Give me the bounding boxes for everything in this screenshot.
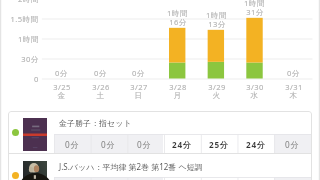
staticText: 24分: [246, 139, 266, 150]
button[interactable]: 0分: [126, 177, 163, 180]
button[interactable]: 48分: [200, 177, 237, 180]
staticText: 木: [289, 91, 298, 100]
staticText: 3/30: [246, 82, 264, 91]
button[interactable]: 52分: [163, 177, 200, 180]
button[interactable]: 0分: [54, 177, 90, 180]
button[interactable]: 24分: [237, 134, 274, 153]
staticText: 金: [57, 91, 66, 100]
button[interactable]: 0分: [54, 134, 90, 153]
staticText: 1時間: [206, 10, 227, 19]
staticText: 水: [250, 91, 259, 100]
staticText: 0分: [285, 139, 300, 150]
staticText: 3/25: [53, 82, 71, 91]
staticText: 1.5時間: [10, 14, 39, 24]
button[interactable]: 0分: [126, 134, 163, 153]
button[interactable]: 24分: [163, 134, 200, 153]
staticText: 3/27: [130, 82, 148, 91]
staticText: 0: [34, 74, 39, 84]
staticText: 0分: [55, 68, 68, 77]
staticText: 金子勝子：指セット: [59, 118, 132, 128]
staticText: 2時間: [18, 0, 39, 4]
staticText: 1時間: [18, 34, 39, 44]
staticText: 1時間: [167, 8, 188, 17]
staticText: 0分: [65, 139, 80, 150]
button[interactable]: 0分: [90, 134, 126, 153]
button[interactable]: 0分: [90, 177, 126, 180]
staticText: 3/31: [285, 82, 303, 91]
staticText: 13分: [208, 19, 226, 28]
staticText: J.S.バッハ：平均律 第2巻 第12番 ヘ短調: [59, 161, 203, 172]
button[interactable]: 金子勝子：指セット: [8, 111, 312, 153]
staticText: 日: [134, 91, 143, 100]
staticText: 火: [212, 91, 221, 100]
button[interactable]: 0分: [274, 177, 311, 180]
button[interactable]: J.S.バッハ：平均律 第2巻 第12番 ヘ短調: [8, 154, 312, 180]
staticText: 月: [173, 91, 182, 100]
staticText: 25分: [209, 139, 229, 150]
staticText: 24分: [172, 139, 192, 150]
staticText: 0分: [287, 68, 300, 77]
staticText: 1時間: [244, 0, 265, 7]
staticText: 0分: [137, 139, 152, 150]
staticText: 3/29: [208, 82, 226, 91]
staticText: 16分: [169, 17, 187, 26]
button[interactable]: 25分: [200, 134, 237, 153]
button[interactable]: 67分: [237, 177, 274, 180]
staticText: 0分: [101, 139, 116, 150]
button[interactable]: 0分: [274, 134, 311, 153]
staticText: 3/28: [169, 82, 187, 91]
staticText: 30分: [21, 54, 39, 64]
staticText: 31分: [246, 7, 264, 16]
staticText: 3/26: [92, 82, 110, 91]
staticText: 0分: [94, 68, 107, 77]
staticText: 0分: [132, 68, 145, 77]
staticText: 土: [96, 91, 105, 100]
